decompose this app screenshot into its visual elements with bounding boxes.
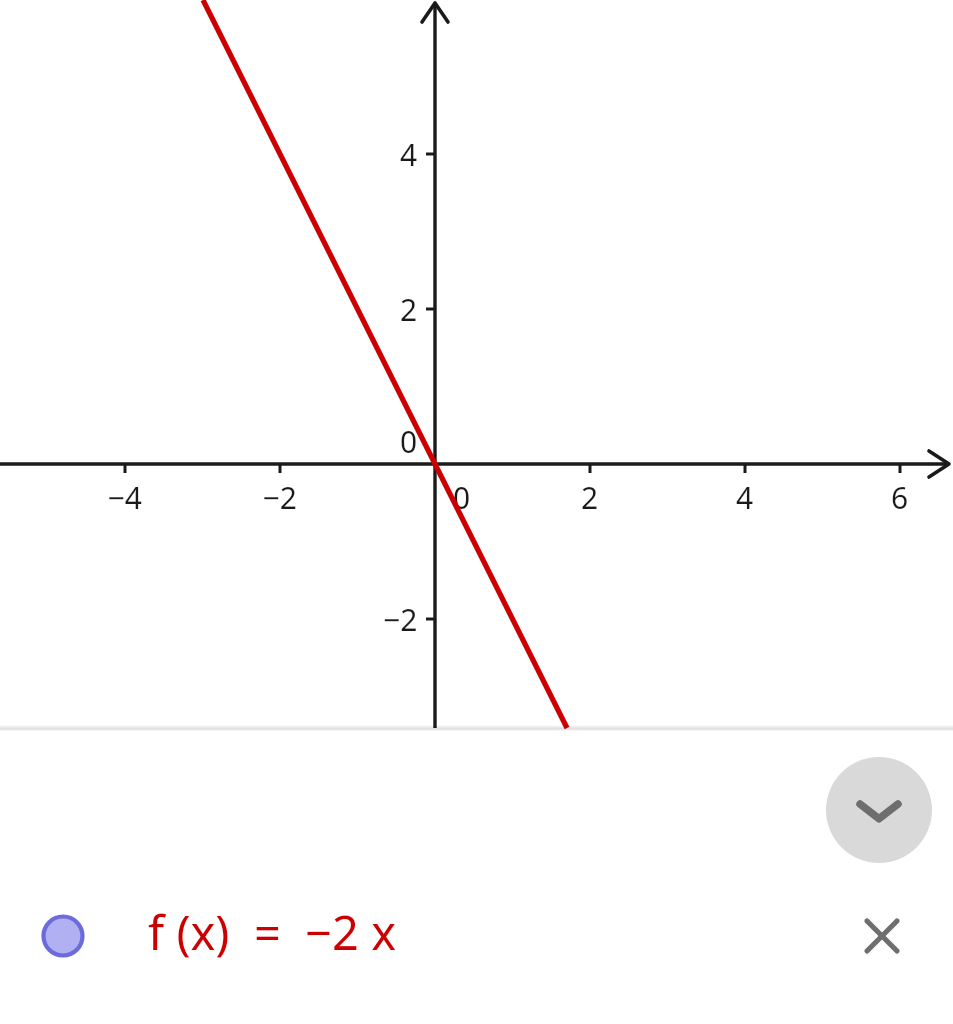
button[interactable]: Delete equation: [850, 904, 914, 968]
button[interactable]: [0, 0, 953, 728]
button[interactable]: Toggle visibility: [0, 882, 953, 982]
button[interactable]: Toggle visibility: [41, 914, 85, 958]
button[interactable]: Collapse panel: [826, 757, 932, 863]
